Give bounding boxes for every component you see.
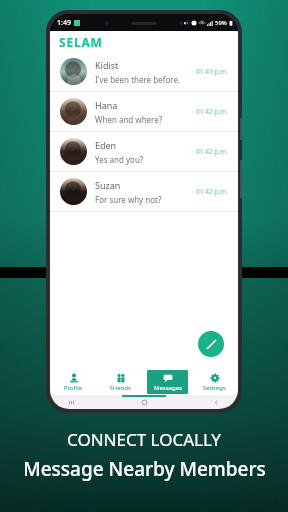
staticText: Hana — [95, 99, 118, 111]
staticText: Message Nearby Members — [23, 456, 266, 482]
staticText: I've been there before. — [95, 74, 181, 85]
button[interactable]: Compose message — [198, 331, 224, 357]
button[interactable]: Profile — [53, 370, 94, 394]
staticText: 1:49 — [57, 18, 71, 28]
staticText: 01:43 p.m. — [196, 67, 228, 76]
staticText: SELAM — [59, 34, 103, 50]
button[interactable]: Hana — [50, 92, 238, 132]
staticText: Yes and you? — [95, 154, 144, 165]
staticText: Suzan — [95, 179, 121, 191]
button[interactable]: Messages — [147, 370, 188, 394]
staticText: 01:42 p.m. — [196, 147, 228, 156]
staticText: Eden — [95, 139, 117, 151]
button[interactable]: Friends — [100, 370, 141, 394]
staticText: 01:42 p.m. — [196, 107, 228, 116]
button[interactable]: Suzan — [50, 172, 238, 212]
button[interactable]: Kidist — [50, 52, 238, 92]
staticText: CONNECT LOCALLY — [67, 428, 221, 451]
staticText: 01:42 p.m. — [196, 187, 228, 196]
staticText: When and where? — [95, 114, 163, 125]
staticText: Profile — [64, 384, 83, 392]
button[interactable]: Eden — [50, 132, 238, 172]
staticText: 59% — [215, 19, 227, 27]
staticText: Kidist — [95, 59, 119, 71]
staticText: For sure why not? — [95, 194, 162, 205]
staticText: Settings — [203, 384, 226, 392]
button[interactable]: Settings — [194, 370, 235, 394]
staticText: Messages — [154, 384, 182, 392]
staticText: Friends — [110, 384, 131, 392]
